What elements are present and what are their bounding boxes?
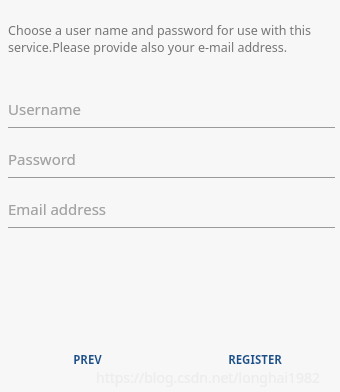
button[interactable]: PREV — [52, 347, 122, 372]
staticText: Email address — [8, 199, 107, 219]
button[interactable]: Username — [8, 78, 335, 128]
button[interactable]: Email address — [8, 178, 335, 228]
staticText: Password — [8, 149, 76, 169]
staticText: Choose a user name and password for use … — [8, 22, 335, 56]
button[interactable]: REGISTER — [217, 347, 293, 372]
staticText: PREV — [73, 352, 102, 368]
staticText: REGISTER — [228, 352, 282, 368]
staticText: Username — [8, 99, 81, 119]
button[interactable]: Password — [8, 128, 335, 178]
staticText: https://blog.csdn.net/longhai1982 — [96, 368, 321, 387]
